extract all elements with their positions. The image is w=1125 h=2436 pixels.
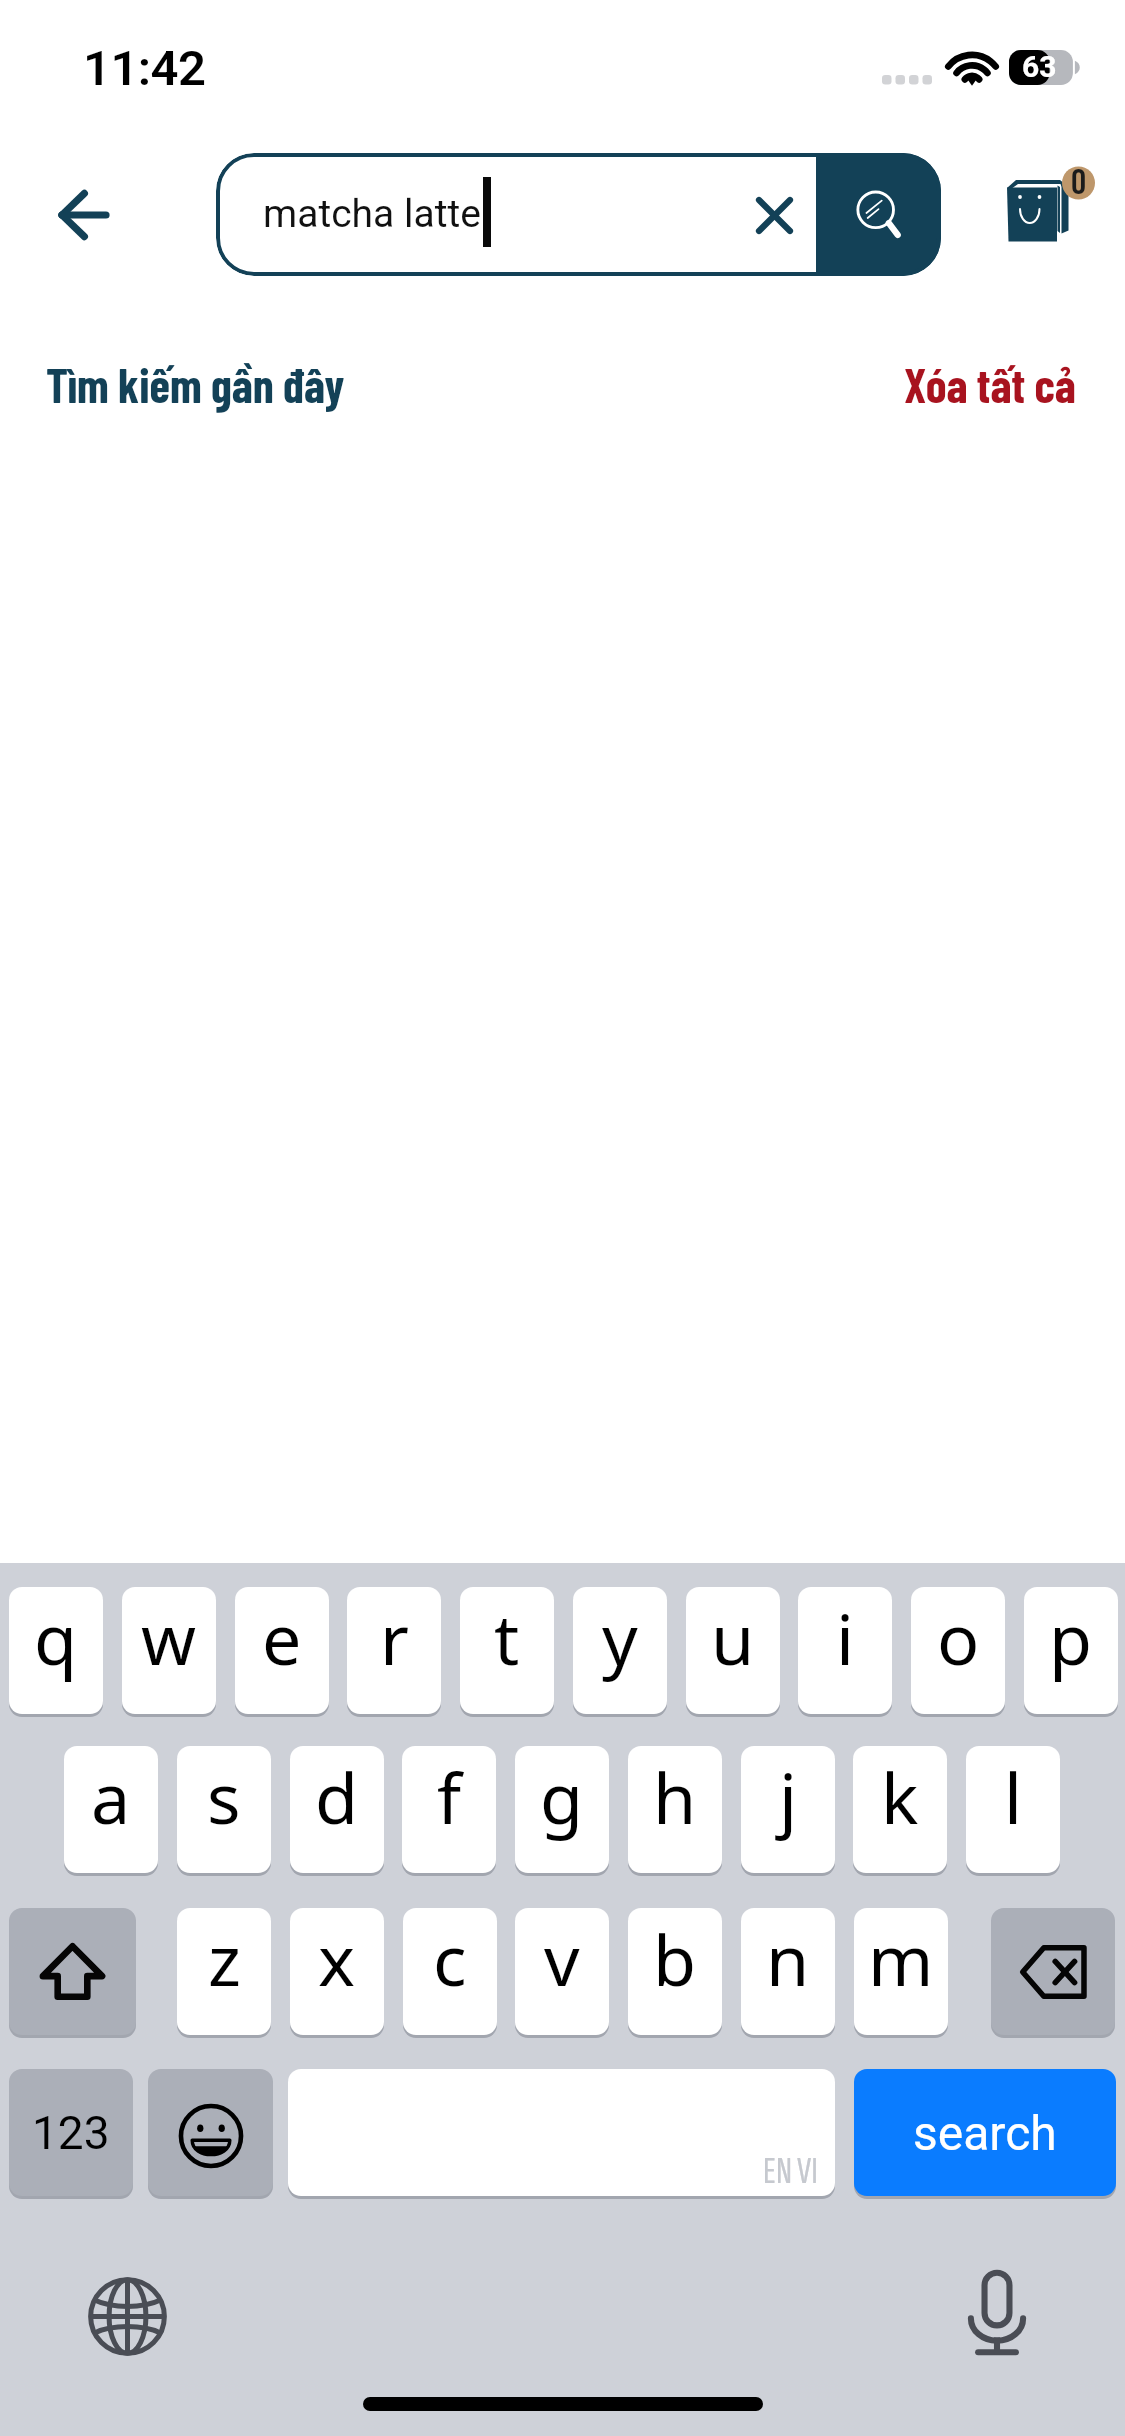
button[interactable]: t bbox=[460, 1587, 554, 1714]
button[interactable]: y bbox=[573, 1587, 667, 1714]
button[interactable]: d bbox=[290, 1746, 384, 1873]
button[interactable]: l bbox=[966, 1746, 1060, 1873]
staticText: Tìm kiếm gần đây bbox=[46, 356, 345, 412]
button[interactable]: Xóa tất cả bbox=[888, 352, 1060, 408]
button[interactable]: Shopping bag, 0 items bbox=[990, 160, 1110, 260]
button[interactable]: u bbox=[686, 1587, 780, 1714]
button[interactable]: n bbox=[741, 1908, 835, 2035]
button[interactable]: x bbox=[290, 1908, 384, 2035]
staticText: d bbox=[315, 1749, 359, 1844]
button[interactable]: q bbox=[9, 1587, 103, 1714]
staticText: 0 bbox=[1058, 160, 1099, 206]
staticText: b bbox=[653, 1911, 697, 2006]
button[interactable]: Shift bbox=[9, 1908, 136, 2035]
button[interactable]: z bbox=[177, 1908, 271, 2035]
button[interactable]: Backspace bbox=[991, 1908, 1115, 2035]
staticText: o bbox=[937, 1590, 980, 1685]
button[interactable]: b bbox=[628, 1908, 722, 2035]
staticText: matcha latte bbox=[263, 191, 481, 237]
staticText: u bbox=[711, 1590, 755, 1685]
staticText: search bbox=[913, 2105, 1057, 2161]
staticText: h bbox=[653, 1749, 697, 1844]
staticText: f bbox=[437, 1749, 462, 1844]
staticText: c bbox=[433, 1911, 467, 2006]
staticText: 63 bbox=[1022, 49, 1057, 84]
button[interactable]: s bbox=[177, 1746, 271, 1873]
staticText: s bbox=[207, 1749, 241, 1844]
button[interactable]: a bbox=[64, 1746, 158, 1873]
button[interactable]: o bbox=[911, 1587, 1005, 1714]
staticText: g bbox=[540, 1749, 584, 1844]
button[interactable]: Back bbox=[38, 170, 128, 260]
button[interactable]: Emoji bbox=[148, 2069, 273, 2196]
button[interactable]: m bbox=[854, 1908, 948, 2035]
button[interactable]: Numbers bbox=[9, 2069, 133, 2196]
button[interactable]: Change keyboard language bbox=[81, 2270, 173, 2362]
button[interactable]: g bbox=[515, 1746, 609, 1873]
button[interactable]: v bbox=[515, 1908, 609, 2035]
button[interactable]: c bbox=[403, 1908, 497, 2035]
staticText: l bbox=[1004, 1749, 1023, 1844]
staticText: e bbox=[262, 1590, 302, 1685]
staticText: j bbox=[779, 1749, 798, 1844]
button[interactable]: Search field bbox=[216, 153, 941, 276]
button[interactable]: Search bbox=[816, 153, 941, 276]
staticText: 11:42 bbox=[83, 40, 206, 97]
staticText: EN VI bbox=[763, 2148, 818, 2195]
button[interactable]: k bbox=[853, 1746, 947, 1873]
staticText: i bbox=[836, 1590, 855, 1685]
staticText: w bbox=[141, 1590, 197, 1685]
button[interactable]: Tìm kiếm gần đây bbox=[30, 352, 329, 408]
staticText: z bbox=[208, 1911, 241, 2006]
staticText: v bbox=[544, 1911, 580, 2006]
staticText: 123 bbox=[32, 2106, 110, 2160]
button[interactable]: Clear search text bbox=[734, 175, 814, 255]
staticText: x bbox=[318, 1911, 356, 2006]
button[interactable]: j bbox=[741, 1746, 835, 1873]
button[interactable]: r bbox=[347, 1587, 441, 1714]
button[interactable]: p bbox=[1024, 1587, 1118, 1714]
staticText: t bbox=[494, 1590, 520, 1685]
staticText: q bbox=[34, 1590, 78, 1685]
button[interactable]: h bbox=[628, 1746, 722, 1873]
staticText: a bbox=[91, 1749, 131, 1844]
staticText: Xóa tất cả bbox=[904, 356, 1076, 412]
staticText: p bbox=[1049, 1590, 1093, 1685]
button[interactable]: Voice input bbox=[951, 2267, 1043, 2359]
button[interactable]: i bbox=[798, 1587, 892, 1714]
staticText: y bbox=[602, 1590, 638, 1685]
staticText: n bbox=[766, 1911, 810, 2006]
button[interactable]: f bbox=[402, 1746, 496, 1873]
staticText: k bbox=[881, 1749, 919, 1844]
button[interactable]: e bbox=[235, 1587, 329, 1714]
staticText: m bbox=[868, 1911, 934, 2006]
button[interactable]: Space bbox=[288, 2069, 835, 2196]
button[interactable]: search bbox=[854, 2069, 1116, 2196]
button[interactable]: w bbox=[122, 1587, 216, 1714]
staticText: r bbox=[380, 1590, 409, 1685]
